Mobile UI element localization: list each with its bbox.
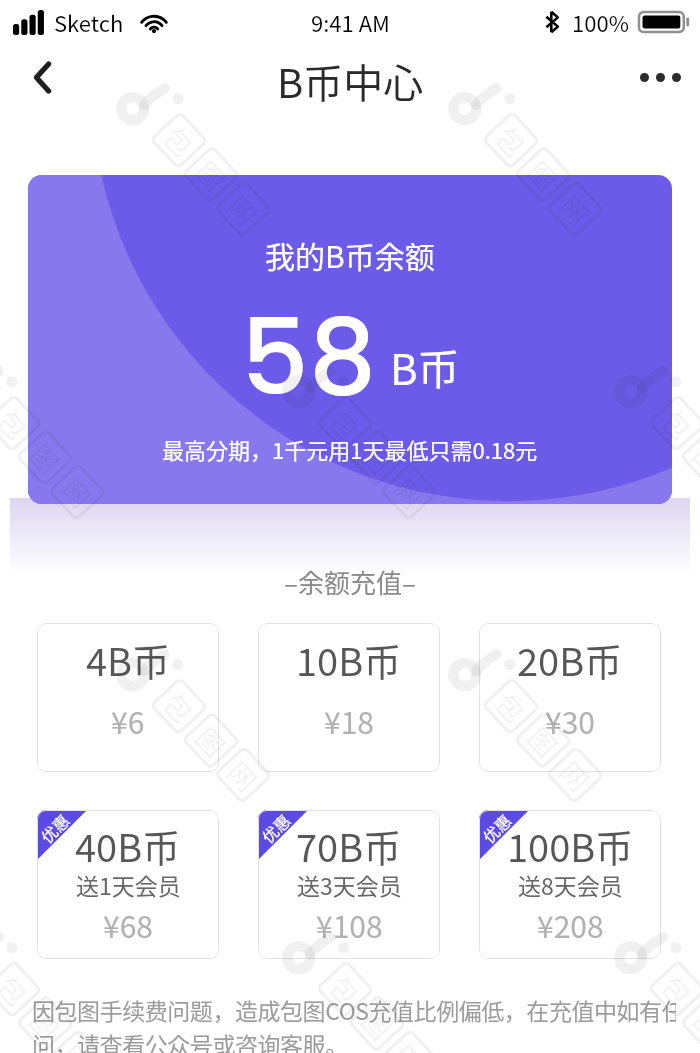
staticText: B币 — [390, 336, 460, 397]
staticText: ¥6 — [111, 699, 145, 742]
button[interactable]: More options — [634, 51, 686, 103]
staticText: 100% — [572, 6, 629, 38]
staticText: 包 — [0, 967, 36, 1013]
staticText: 优惠 — [37, 810, 74, 847]
staticText: 因包图手续费问题，造成包图COS充值比例偏低，在充值中如有任何疑 — [32, 993, 676, 1026]
staticText: 网 — [220, 186, 267, 233]
staticText: 网 — [54, 469, 101, 516]
staticText: 最高分期，1千元用1天最低只需0.18元 — [162, 433, 538, 465]
staticText: ¥108 — [316, 903, 383, 946]
staticText: ¥208 — [537, 903, 604, 946]
staticText: 问，请查看公众号或咨询客服。 — [32, 1027, 348, 1053]
staticText: 网 — [552, 186, 599, 233]
staticText: 图 — [188, 152, 234, 198]
staticText: 图 — [520, 152, 566, 198]
staticText: 图 — [520, 718, 566, 764]
staticText: ¥30 — [545, 699, 595, 742]
button[interactable]: 优惠 — [37, 810, 219, 959]
staticText: 包 — [0, 401, 36, 447]
staticText: –余额充值– — [284, 563, 416, 601]
staticText: 70B币 — [296, 818, 402, 873]
staticText: B币中心 — [277, 52, 424, 110]
staticText: 图 — [22, 1001, 68, 1047]
button[interactable]: 20B币 — [479, 623, 661, 772]
staticText: 58 — [241, 283, 377, 431]
staticText: Sketch — [54, 6, 124, 38]
staticText: 包 — [155, 118, 202, 164]
staticText: 优惠 — [479, 810, 516, 847]
staticText: 网 — [386, 1035, 433, 1053]
staticText: 10B币 — [296, 632, 402, 687]
button[interactable]: 优惠 — [258, 810, 440, 959]
staticText: 我的B币余额 — [265, 233, 435, 276]
staticText: 送1天会员 — [76, 868, 181, 901]
staticText: ¥68 — [103, 903, 153, 946]
staticText: 40B币 — [75, 818, 181, 873]
button[interactable]: 我的B币余额 — [28, 175, 672, 504]
staticText: 4B币 — [86, 632, 171, 687]
button[interactable]: 10B币 — [258, 623, 440, 772]
staticText: 送8天会员 — [518, 868, 623, 901]
staticText: 网 — [220, 752, 267, 799]
staticText: 送3天会员 — [297, 868, 402, 901]
button[interactable]: 4B币 — [37, 623, 219, 772]
staticText: 图 — [686, 1001, 700, 1047]
staticText: 图 — [22, 435, 68, 481]
staticText: 优惠 — [258, 810, 295, 847]
staticText: 网 — [54, 1035, 101, 1053]
staticText: 图 — [354, 1001, 400, 1047]
button[interactable]: 优惠 — [479, 810, 661, 959]
staticText: 9:41 AM — [311, 6, 390, 38]
staticText: 网 — [552, 752, 599, 799]
staticText: 包 — [321, 401, 368, 447]
staticText: 包 — [155, 684, 202, 730]
staticText: 包 — [653, 401, 700, 447]
button[interactable]: Back — [16, 51, 68, 103]
staticText: 包 — [321, 967, 368, 1013]
staticText: 包 — [487, 684, 534, 730]
staticText: 图 — [354, 435, 400, 481]
staticText: 20B币 — [517, 632, 623, 687]
staticText: 图 — [188, 718, 234, 764]
staticText: 100B币 — [507, 818, 634, 873]
staticText: 包 — [653, 967, 700, 1013]
staticText: 网 — [386, 469, 433, 516]
staticText: 图 — [686, 435, 700, 481]
staticText: ¥18 — [324, 699, 374, 742]
staticText: 包 — [487, 118, 534, 164]
